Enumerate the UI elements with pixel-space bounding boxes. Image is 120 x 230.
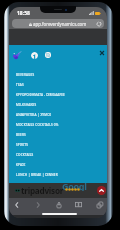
button[interactable]: ΑΝΑΨΥΚΤΙΚΑ | ΧΥΜΟΙ [9,110,107,120]
button[interactable]: Tabs [94,199,105,210]
button[interactable]: Back [11,199,22,210]
staticText: MILKSHAKES [16,103,37,107]
staticText: SPIRITS [16,143,29,147]
staticText: BEVERAGES [16,73,35,77]
button[interactable]: MILKSHAKES [9,100,107,110]
staticText: Google [62,183,88,191]
staticText: ΑΝΑΨΥΚΤΙΚΑ | ΧΥΜΟΙ [16,113,52,117]
button[interactable]: Share [53,199,64,210]
staticText: BEERS [16,133,26,137]
button[interactable]: MOCKTAILS COCKTAILS 0% [9,120,107,130]
button[interactable]: ΚΡΑΣΙ [9,160,107,170]
button[interactable]: ΚΡΥΟΡΟΦΗΜΑΤΑ - DIMGAAFEE [9,90,107,100]
staticText: 18:58 [17,10,30,17]
staticText: MOCKTAILS COCKTAILS 0% [16,123,59,127]
button[interactable]: Bookmarks [73,199,84,210]
button[interactable]: app.foreverdynamics.com [12,19,104,28]
staticText: ΚΡΥΟΡΟΦΗΜΑΤΑ - DIMGAAFEE [16,93,65,97]
staticText: app.foreverdynamics.com [33,21,87,27]
button[interactable]: Forward [32,199,43,210]
button[interactable]: Instagram [45,52,51,58]
button[interactable]: Close menu [97,48,106,57]
button[interactable]: BEERS [9,130,107,140]
button[interactable]: LUNCH | BREAK | DINNER [9,170,107,180]
button[interactable]: COCKTAILS [9,150,107,160]
button[interactable]: SPIRITS [9,140,107,150]
staticText: ΚΡΑΣΙ [16,163,26,167]
button[interactable]: Facebook [31,52,38,59]
button[interactable]: Reload [96,21,102,27]
staticText: tripadvisor [21,185,64,196]
button[interactable]: Scroll to top [97,186,106,195]
staticText: COCKTAILS [16,153,34,157]
button[interactable]: TEAS [9,80,107,90]
staticText: LUNCH | BREAK | DINNER [16,173,58,177]
staticText: TEAS [16,83,24,87]
button[interactable]: BEVERAGES [9,70,107,80]
